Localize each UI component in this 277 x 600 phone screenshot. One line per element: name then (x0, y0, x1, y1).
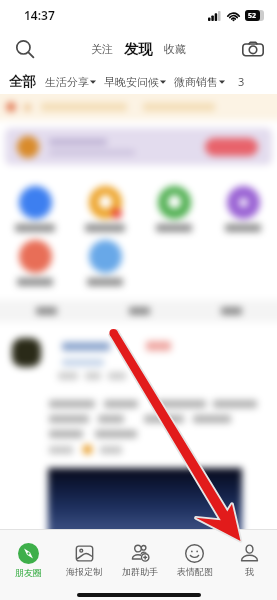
staticText: 52 (248, 11, 257, 21)
staticText: 关注 (91, 42, 113, 56)
staticText: 早晚安问候 (104, 75, 159, 89)
button[interactable]: 加群助手 (112, 535, 167, 585)
button[interactable]: 全部 (8, 70, 37, 93)
button[interactable]: 关注 (86, 37, 118, 61)
button[interactable]: 微商销售 (166, 72, 225, 92)
staticText: 加群助手 (122, 566, 158, 577)
staticText: 表情配图 (177, 566, 213, 577)
button[interactable]: 朋友圈 (0, 535, 56, 585)
button[interactable]: Camera (237, 33, 269, 65)
button[interactable]: 发现 (118, 35, 159, 63)
staticText: 生活分享 (45, 75, 89, 89)
staticText: 我 (245, 566, 254, 577)
button[interactable]: 生活分享 (37, 72, 96, 92)
button[interactable] (93, 300, 185, 322)
button[interactable] (185, 300, 277, 322)
button[interactable] (0, 300, 93, 322)
staticText: 收藏 (164, 42, 186, 56)
staticText: 朋友圈 (15, 567, 42, 578)
button[interactable] (85, 186, 125, 232)
staticText: 3 (238, 74, 245, 89)
button[interactable]: 早晚安问候 (96, 72, 166, 92)
button[interactable] (87, 240, 123, 286)
button[interactable]: 表情配图 (167, 535, 222, 585)
button[interactable] (156, 186, 192, 232)
staticText: 微商销售 (174, 75, 218, 89)
button[interactable]: 收藏 (159, 37, 191, 61)
staticText: 全部 (9, 73, 36, 90)
button[interactable] (17, 240, 53, 286)
button[interactable]: 3 (225, 74, 245, 89)
button[interactable]: Search (9, 33, 41, 65)
button[interactable]: 我 (222, 535, 277, 585)
staticText: 海报定制 (66, 566, 102, 577)
staticText: 发现 (124, 40, 153, 58)
button[interactable] (225, 186, 261, 232)
button[interactable] (5, 128, 272, 165)
button[interactable] (15, 186, 55, 232)
staticText: 14:37 (24, 7, 55, 23)
button[interactable]: 海报定制 (56, 535, 112, 585)
